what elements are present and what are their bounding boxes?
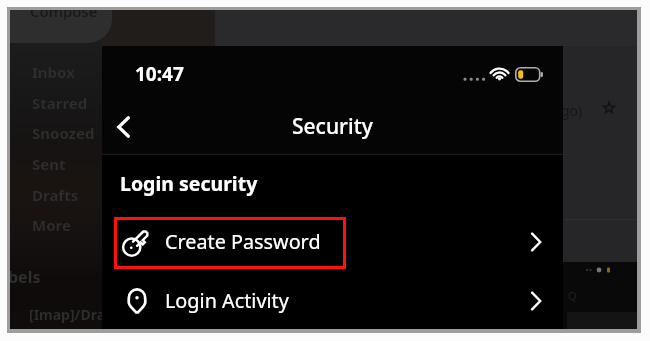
- staticText: Security: [292, 112, 373, 141]
- button[interactable]: Starred: [8, 90, 102, 116]
- staticText: Q: [568, 288, 577, 303]
- staticText: Login security: [120, 170, 258, 197]
- staticText: bels: [8, 266, 41, 288]
- staticText: 10:47: [135, 61, 184, 87]
- button[interactable]: bels: [0, 264, 60, 290]
- button[interactable]: Drafts: [8, 182, 102, 208]
- button[interactable]: Login Activity: [102, 271, 563, 330]
- staticText: Snoozed: [32, 123, 95, 143]
- staticText: [Imap]/Draf: [29, 305, 111, 324]
- button[interactable]: Inbox: [8, 59, 102, 85]
- button[interactable]: Star: [597, 96, 621, 120]
- staticText: Create Password: [165, 228, 321, 255]
- staticText: Sent: [32, 154, 66, 174]
- button[interactable]: Compose: [8, 0, 112, 43]
- staticText: More: [32, 215, 71, 235]
- button[interactable]: Create Password: [102, 212, 563, 271]
- button[interactable]: [Imap]/Draf: [24, 301, 134, 327]
- button[interactable]: Sent: [8, 151, 102, 177]
- staticText: Compose: [30, 1, 98, 21]
- staticText: Inbox: [32, 62, 75, 82]
- button[interactable]: More: [8, 212, 102, 238]
- staticText: go): [561, 101, 583, 120]
- button[interactable]: Snoozed: [8, 120, 102, 146]
- button[interactable]: Back: [103, 106, 145, 148]
- staticText: Starred: [32, 93, 88, 113]
- staticText: Drafts: [32, 185, 79, 205]
- staticText: Login Activity: [165, 287, 289, 314]
